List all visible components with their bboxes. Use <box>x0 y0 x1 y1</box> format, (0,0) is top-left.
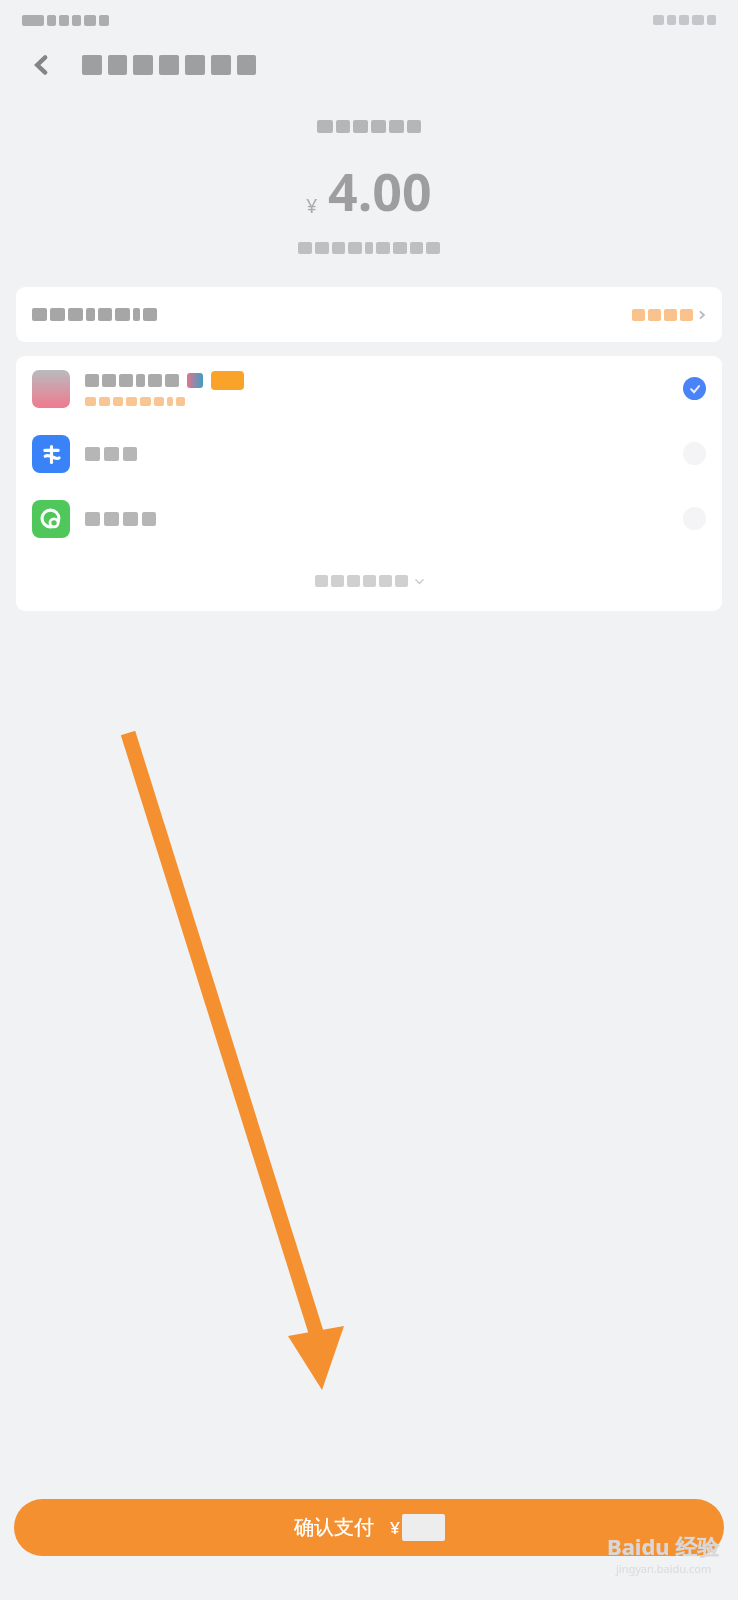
staticText: jingyan.baidu.com <box>616 1561 712 1576</box>
other: Select payment method <box>683 442 706 465</box>
staticText: ¥ <box>390 1516 400 1539</box>
staticText: Baidu 经验 <box>607 1531 720 1561</box>
button[interactable]: 确认支付 <box>14 1499 724 1556</box>
staticText: 确认支付 <box>294 1515 374 1540</box>
button[interactable]: Select payment method <box>16 486 722 551</box>
button[interactable]: Select payment method <box>16 421 722 486</box>
staticText: 4.00 <box>328 155 432 226</box>
other: Select payment method <box>683 507 706 530</box>
button[interactable] <box>16 287 722 342</box>
button[interactable] <box>16 551 722 611</box>
button[interactable]: Back <box>20 43 64 87</box>
other: Selected <box>683 377 706 400</box>
staticText: ¥ <box>306 192 318 219</box>
button[interactable]: Selected <box>16 356 722 421</box>
